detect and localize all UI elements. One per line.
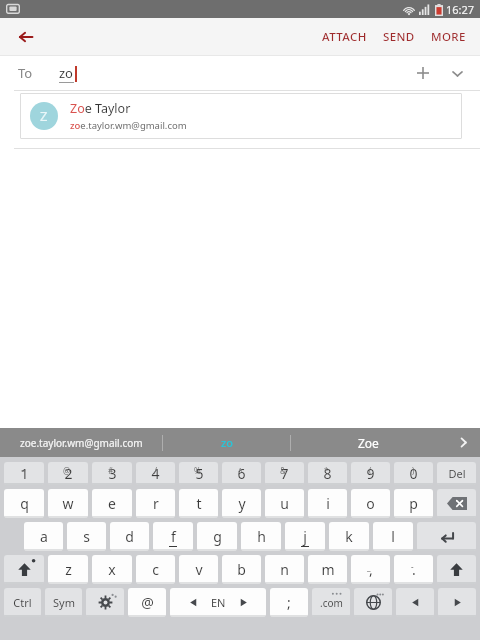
staticText: j: [303, 527, 307, 546]
button[interactable]: .com: [312, 588, 350, 617]
button[interactable]: v: [179, 555, 218, 584]
button[interactable]: 5: [179, 462, 218, 485]
staticText: p: [409, 494, 418, 513]
button[interactable]: zo: [163, 428, 290, 457]
staticText: l: [391, 527, 395, 546]
staticText: b: [237, 560, 246, 579]
button[interactable]: Settings: [86, 588, 124, 617]
staticText: zoe.taylor.wm@gmail.com: [70, 119, 187, 132]
staticText: v: [195, 560, 203, 579]
button[interactable]: e: [92, 489, 132, 518]
button[interactable]: Z: [20, 93, 462, 139]
button[interactable]: ;: [270, 588, 308, 617]
button[interactable]: s: [67, 522, 106, 551]
button[interactable]: y: [222, 489, 261, 518]
button[interactable]: z: [48, 555, 88, 584]
staticText: 5: [195, 464, 204, 483]
staticText: *: [324, 465, 329, 476]
button[interactable]: j: [285, 522, 325, 551]
button[interactable]: Zoe: [291, 428, 446, 457]
button[interactable]: 3: [92, 462, 132, 485]
button[interactable]: q: [4, 489, 44, 518]
button[interactable]: SEND: [375, 23, 423, 51]
button[interactable]: h: [241, 522, 281, 551]
button[interactable]: d: [110, 522, 149, 551]
button[interactable]: Back: [8, 19, 44, 55]
button[interactable]: i: [308, 489, 347, 518]
button[interactable]: c: [136, 555, 175, 584]
button[interactable]: 1: [4, 462, 44, 485]
button[interactable]: b: [222, 555, 261, 584]
button[interactable]: f: [153, 522, 193, 551]
staticText: y: [238, 494, 246, 513]
button[interactable]: n: [265, 555, 304, 584]
staticText: 1: [20, 464, 29, 483]
button[interactable]: MORE: [423, 23, 474, 51]
staticText: z: [65, 560, 72, 579]
staticText: n: [280, 560, 289, 579]
button[interactable]: x: [92, 555, 132, 584]
button[interactable]: r: [136, 489, 175, 518]
button[interactable]: Space: [170, 588, 266, 617]
button[interactable]: u: [265, 489, 304, 518]
button[interactable]: Del: [437, 462, 476, 485]
button[interactable]: Cursor right: [438, 588, 476, 617]
button[interactable]: t: [179, 489, 218, 518]
button[interactable]: Cursor left: [396, 588, 434, 617]
button[interactable]: ATTACH: [314, 23, 375, 51]
button[interactable]: Expand: [440, 56, 474, 90]
staticText: /: [154, 465, 157, 476]
staticText: w: [62, 494, 74, 513]
staticText: m: [321, 560, 335, 579]
button[interactable]: l: [373, 522, 413, 551]
staticText: SEND: [383, 29, 415, 45]
staticText: Z: [40, 107, 48, 125]
staticText: u: [280, 494, 289, 513]
button[interactable]: .: [394, 555, 433, 584]
staticText: Zoe: [358, 435, 379, 451]
button[interactable]: Change language: [354, 588, 392, 617]
staticText: t: [196, 494, 202, 513]
button[interactable]: 9: [351, 462, 390, 485]
button[interactable]: zoe.taylor.wm@gmail.com: [0, 428, 162, 457]
button[interactable]: Shift: [4, 555, 44, 584]
button[interactable]: m: [308, 555, 347, 584]
button[interactable]: 0: [394, 462, 433, 485]
staticText: 7: [280, 464, 289, 483]
staticText: 8: [323, 464, 332, 483]
button[interactable]: 2: [48, 462, 88, 485]
staticText: ATTACH: [322, 29, 367, 45]
staticText: ;: [287, 593, 291, 612]
staticText: i: [326, 494, 330, 513]
button[interactable]: @: [128, 588, 166, 617]
button[interactable]: ,: [351, 555, 390, 584]
button[interactable]: 8: [308, 462, 347, 485]
button[interactable]: Shift: [437, 555, 476, 584]
button[interactable]: k: [329, 522, 369, 551]
staticText: ): [412, 465, 415, 476]
staticText: k: [345, 527, 353, 546]
button[interactable]: a: [24, 522, 63, 551]
button[interactable]: Sym: [45, 588, 82, 617]
button[interactable]: Ctrl: [4, 588, 41, 617]
button[interactable]: 7: [265, 462, 304, 485]
staticText: @: [63, 465, 71, 476]
button[interactable]: p: [394, 489, 433, 518]
button[interactable]: w: [48, 489, 88, 518]
staticText: To: [18, 64, 33, 82]
button[interactable]: g: [197, 522, 237, 551]
staticText: .: [412, 560, 416, 579]
button[interactable]: More suggestions: [446, 428, 480, 457]
button[interactable]: 4: [136, 462, 175, 485]
staticText: r: [153, 494, 159, 513]
staticText: #: [108, 465, 114, 476]
staticText: 2: [64, 464, 73, 483]
button[interactable]: 6: [222, 462, 261, 485]
button[interactable]: Add recipient: [406, 56, 440, 90]
staticText: _: [367, 561, 371, 572]
staticText: MORE: [431, 29, 466, 45]
button[interactable]: Backspace: [437, 489, 476, 518]
button[interactable]: o: [351, 489, 390, 518]
staticText: ~: [21, 465, 26, 476]
button[interactable]: Enter: [417, 522, 476, 551]
